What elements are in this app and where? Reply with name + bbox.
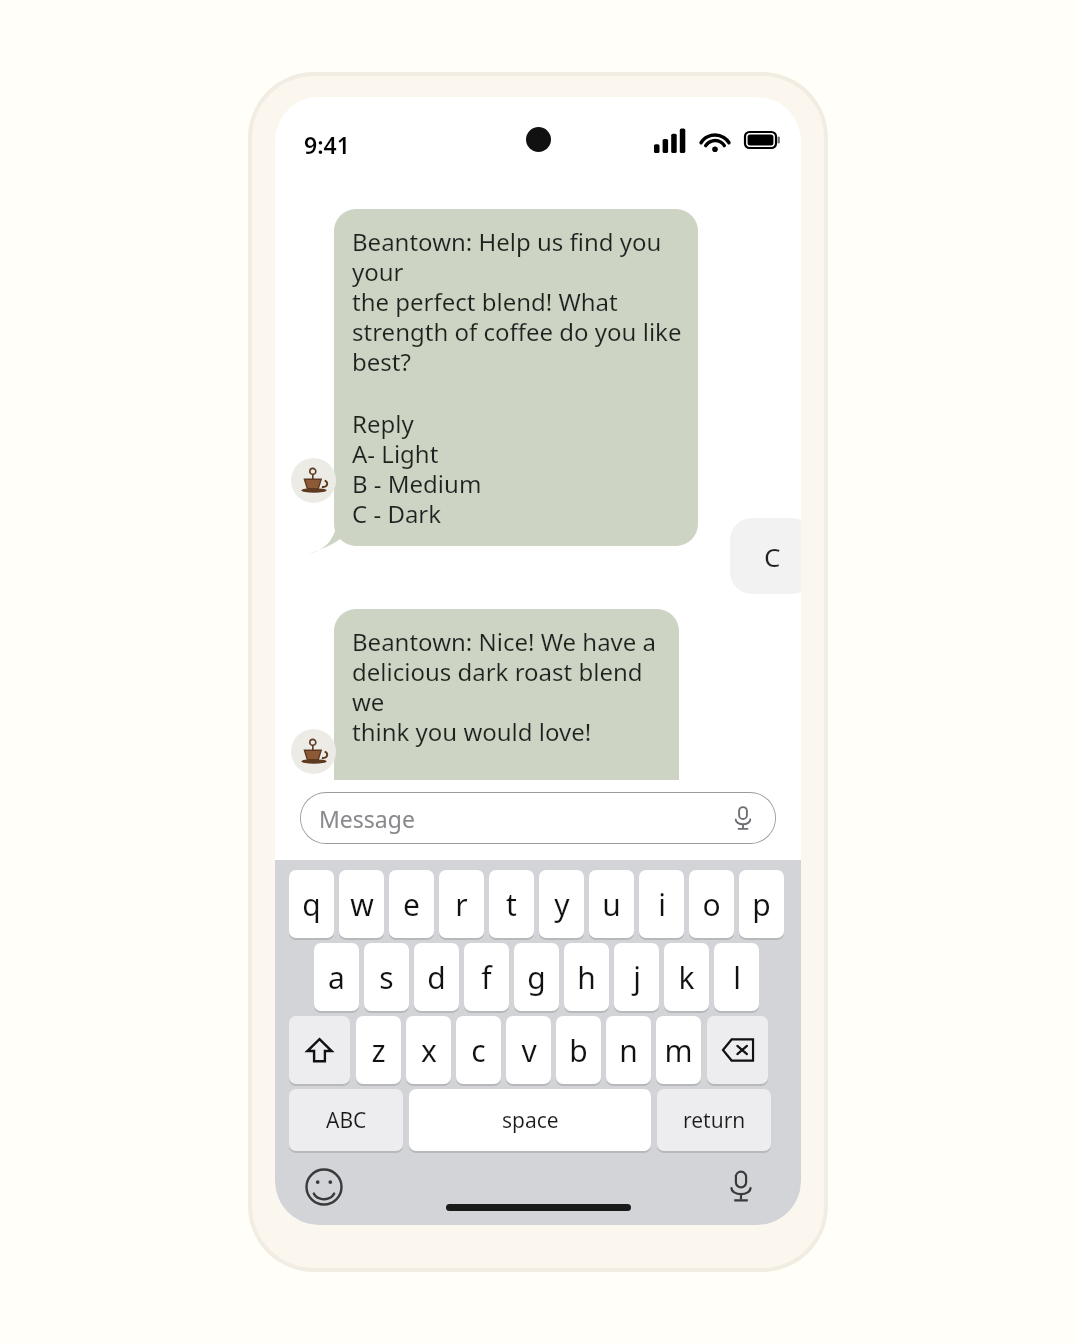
button[interactable]: return <box>657 1089 771 1154</box>
staticText: Beantown: Nice! We have a delicious dark… <box>352 625 663 748</box>
other: Beantown avatar <box>291 729 336 774</box>
staticText: v <box>521 1030 537 1071</box>
button[interactable]: ABC <box>289 1089 403 1154</box>
button[interactable]: h <box>564 943 609 1014</box>
button[interactable]: d <box>414 943 459 1014</box>
button[interactable]: p <box>739 870 784 941</box>
button[interactable]: Beantown: Help us find you your the perf… <box>334 209 698 546</box>
button[interactable]: f <box>464 943 509 1014</box>
staticText: space <box>502 1106 559 1135</box>
button[interactable]: b <box>556 1016 601 1087</box>
staticText: r <box>455 884 468 925</box>
button[interactable]: space <box>409 1089 651 1154</box>
button[interactable]: n <box>606 1016 651 1087</box>
staticText: Reply A- Light B - Medium C - Dark <box>352 407 482 530</box>
button[interactable]: z <box>356 1016 401 1087</box>
staticText: 9:41 <box>304 129 350 160</box>
button[interactable]: Emoji <box>303 1166 345 1208</box>
staticText: k <box>678 957 695 998</box>
button[interactable]: c <box>456 1016 501 1087</box>
button[interactable]: r <box>439 870 484 941</box>
staticText: Beantown: Help us find you your the perf… <box>352 225 682 378</box>
button[interactable]: o <box>689 870 734 941</box>
staticText: z <box>371 1030 386 1071</box>
staticText: f <box>481 957 492 998</box>
button[interactable]: i <box>639 870 684 941</box>
button[interactable]: C <box>730 518 801 594</box>
staticText: b <box>569 1030 588 1071</box>
button[interactable]: Voice input <box>726 801 760 835</box>
staticText: i <box>658 884 666 925</box>
staticText: s <box>379 957 394 998</box>
other: Beantown avatar <box>291 458 336 503</box>
staticText: m <box>664 1030 693 1071</box>
button[interactable]: w <box>339 870 384 941</box>
staticText: n <box>619 1030 638 1071</box>
staticText: y <box>554 884 570 925</box>
staticText: x <box>421 1030 437 1071</box>
button[interactable]: q <box>289 870 334 941</box>
staticText: q <box>302 884 321 925</box>
staticText: a <box>328 957 345 998</box>
staticText: p <box>752 884 771 925</box>
button[interactable]: m <box>656 1016 701 1087</box>
button[interactable]: k <box>664 943 709 1014</box>
button[interactable]: Shift <box>289 1016 350 1087</box>
button[interactable]: y <box>539 870 584 941</box>
button[interactable]: e <box>389 870 434 941</box>
button[interactable]: s <box>364 943 409 1014</box>
button[interactable]: a <box>314 943 359 1014</box>
button[interactable]: Message <box>300 792 776 844</box>
staticText: c <box>471 1030 486 1071</box>
button[interactable]: Beantown: Nice! We have a delicious dark… <box>334 609 679 826</box>
staticText: Buy now! <box>352 777 456 810</box>
staticText: e <box>403 884 420 925</box>
button[interactable]: g <box>514 943 559 1014</box>
staticText: Message <box>319 803 415 834</box>
button[interactable]: v <box>506 1016 551 1087</box>
staticText: o <box>702 884 721 925</box>
staticText: return <box>683 1106 746 1135</box>
staticText: u <box>602 884 621 925</box>
staticText: h <box>577 957 596 998</box>
staticText: l <box>733 957 741 998</box>
button[interactable]: t <box>489 870 534 941</box>
button[interactable]: Dictate <box>719 1164 763 1208</box>
button[interactable]: u <box>589 870 634 941</box>
staticText: d <box>427 957 446 998</box>
staticText: C <box>764 539 781 574</box>
staticText: t <box>506 884 517 925</box>
staticText: j <box>633 957 641 998</box>
button[interactable]: Backspace <box>707 1016 768 1087</box>
staticText: g <box>527 957 546 998</box>
staticText: ABC <box>326 1106 367 1135</box>
button[interactable]: x <box>406 1016 451 1087</box>
staticText: w <box>350 884 374 925</box>
button[interactable]: j <box>614 943 659 1014</box>
button[interactable]: l <box>714 943 759 1014</box>
